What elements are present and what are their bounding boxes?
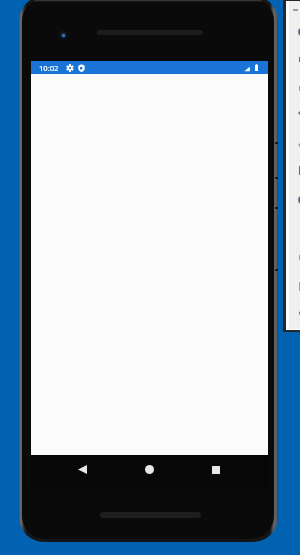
button[interactable]: Back bbox=[73, 460, 92, 479]
button[interactable]: Home bbox=[140, 460, 159, 479]
staticText: 10:02 bbox=[39, 63, 59, 73]
button[interactable]: Recent apps bbox=[206, 460, 225, 479]
